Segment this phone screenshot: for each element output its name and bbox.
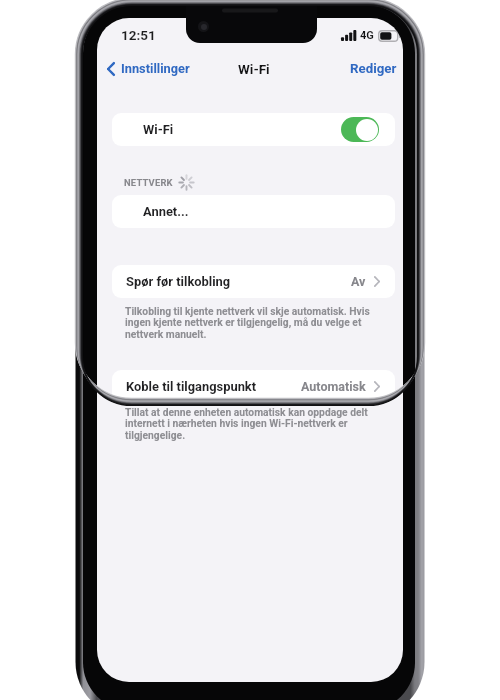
button[interactable]: Wi-Fi toggle, on xyxy=(341,117,379,142)
button[interactable]: Innstillinger xyxy=(104,59,193,78)
staticText: Av xyxy=(351,274,366,289)
button[interactable]: Koble til tilgangspunkt xyxy=(112,370,395,403)
staticText: 4G xyxy=(360,29,374,42)
staticText: NETTVERK xyxy=(124,177,173,188)
staticText: Annet... xyxy=(143,204,189,219)
staticText: Innstillinger xyxy=(121,61,190,76)
button[interactable]: Annet... xyxy=(112,195,395,228)
staticText: Koble til tilgangspunkt xyxy=(126,379,257,394)
staticText: 12:51 xyxy=(121,27,156,43)
button[interactable]: Rediger xyxy=(350,61,397,77)
staticText: Wi-Fi xyxy=(238,61,270,77)
staticText: Wi-Fi xyxy=(143,122,174,137)
staticText: Automatisk xyxy=(301,379,366,394)
staticText: Tillat at denne enheten automatisk kan o… xyxy=(125,406,377,442)
button[interactable]: Wi-Fi xyxy=(112,113,395,146)
staticText: Spør før tilkobling xyxy=(126,274,231,289)
button[interactable]: Spør før tilkobling xyxy=(112,265,395,298)
staticText: Tilkobling til kjente nettverk vil skje … xyxy=(125,305,377,341)
